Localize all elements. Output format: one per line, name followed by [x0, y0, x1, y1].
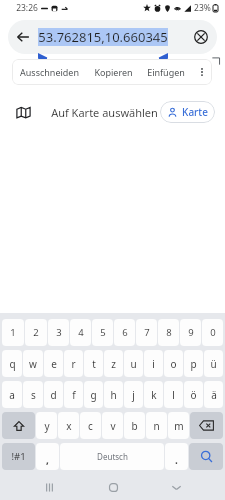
button[interactable]: q	[2, 350, 22, 377]
staticText: 4	[78, 326, 84, 339]
staticText: y	[44, 419, 50, 433]
button[interactable]: 53.762815,10.660345	[38, 20, 185, 54]
button[interactable]: Mehr Optionen	[192, 59, 212, 85]
staticText: Auf Karte auswählen	[51, 105, 158, 120]
staticText: u	[130, 357, 137, 371]
staticText: o	[170, 357, 177, 371]
button[interactable]: f	[64, 381, 83, 408]
button[interactable]: y	[36, 412, 57, 439]
button[interactable]: 0	[202, 319, 223, 346]
staticText: ,	[46, 453, 49, 467]
button[interactable]: Zurück	[161, 474, 191, 500]
button[interactable]: 3	[48, 319, 69, 346]
button[interactable]: x	[58, 412, 79, 439]
button[interactable]: i	[144, 350, 163, 377]
button[interactable]: Löschen	[190, 412, 223, 439]
staticText: Deutsch	[97, 451, 128, 462]
button[interactable]: 8	[158, 319, 179, 346]
button[interactable]: Zuletzt verwendet	[34, 474, 64, 500]
staticText: c	[88, 419, 93, 433]
button[interactable]: ,	[36, 443, 59, 470]
staticText: h	[110, 388, 117, 402]
staticText: !#1	[11, 450, 26, 463]
button[interactable]: .	[165, 443, 188, 470]
button[interactable]: k	[144, 381, 163, 408]
button[interactable]: g	[84, 381, 103, 408]
staticText: 2	[33, 326, 39, 339]
button[interactable]: c	[80, 412, 101, 439]
button[interactable]: Einfügen	[140, 66, 192, 78]
button[interactable]: Leertaste	[60, 443, 164, 470]
button[interactable]: n	[146, 412, 167, 439]
button[interactable]: o	[164, 350, 183, 377]
staticText: 9	[188, 326, 194, 339]
staticText: z	[111, 357, 116, 371]
button[interactable]: b	[124, 412, 145, 439]
staticText: ä	[211, 388, 217, 402]
staticText: 5	[100, 326, 106, 339]
staticText: Einfügen	[147, 66, 185, 78]
button[interactable]: Kopieren	[87, 66, 140, 78]
button[interactable]: Umschalt	[2, 412, 35, 439]
button[interactable]: v	[102, 412, 123, 439]
staticText: i	[152, 357, 155, 371]
button[interactable]: Karte	[160, 101, 215, 123]
button[interactable]: w	[23, 350, 43, 377]
button[interactable]: l	[164, 381, 183, 408]
button[interactable]: a	[2, 381, 22, 408]
button[interactable]: r	[64, 350, 83, 377]
button[interactable]: p	[184, 350, 203, 377]
staticText: 1	[10, 326, 16, 339]
staticText: 53.762815,10.660345	[38, 28, 168, 46]
button[interactable]: Auf Karte auswählen	[0, 97, 225, 127]
button[interactable]: h	[104, 381, 123, 408]
button[interactable]: ä	[204, 381, 223, 408]
button[interactable]: Suchen	[189, 443, 223, 470]
button[interactable]: ü	[204, 350, 223, 377]
staticText: ü	[210, 357, 217, 371]
button[interactable]: 1	[2, 319, 24, 346]
button[interactable]: 9	[180, 319, 201, 346]
staticText: l	[172, 388, 175, 402]
button[interactable]: m	[168, 412, 189, 439]
staticText: 0	[210, 326, 216, 339]
staticText: 23:26	[16, 2, 38, 14]
staticText: 6	[122, 326, 128, 339]
button[interactable]: Startbildschirm	[98, 474, 128, 500]
button[interactable]: u	[124, 350, 143, 377]
staticText: n	[153, 419, 160, 433]
staticText: ö	[190, 388, 197, 402]
staticText: d	[50, 388, 57, 402]
staticText: 7	[144, 326, 150, 339]
staticText: 23%	[194, 2, 211, 14]
button[interactable]: ö	[184, 381, 203, 408]
button[interactable]: Ausschneiden	[12, 66, 87, 78]
staticText: w	[29, 357, 37, 371]
button[interactable]: 2	[25, 319, 47, 346]
staticText: j	[132, 388, 135, 402]
staticText: 3	[56, 326, 62, 339]
button[interactable]: 4	[70, 319, 91, 346]
button[interactable]: 7	[136, 319, 157, 346]
button[interactable]: d	[44, 381, 63, 408]
button[interactable]: !#1	[2, 443, 35, 470]
button[interactable]: Löschen	[185, 21, 217, 53]
staticText: Karte	[182, 105, 208, 119]
button[interactable]: z	[104, 350, 123, 377]
staticText: q	[9, 357, 16, 371]
staticText: .	[175, 453, 178, 467]
staticText: a	[9, 388, 15, 402]
button[interactable]: e	[44, 350, 63, 377]
staticText: r	[71, 357, 76, 371]
button[interactable]: t	[84, 350, 103, 377]
staticText: b	[131, 419, 138, 433]
button[interactable]: Zurück	[8, 22, 38, 52]
staticText: e	[51, 357, 57, 371]
staticText: s	[31, 388, 36, 402]
button[interactable]: j	[124, 381, 143, 408]
staticText: k	[151, 388, 157, 402]
staticText: v	[110, 419, 116, 433]
button[interactable]: s	[23, 381, 43, 408]
button[interactable]: 5	[92, 319, 113, 346]
button[interactable]: 6	[114, 319, 135, 346]
